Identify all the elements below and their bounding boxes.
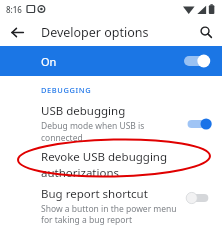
staticText: Debug mode when USB is connected: [41, 120, 186, 144]
button[interactable]: Bug report shortcut: [0, 182, 222, 225]
button[interactable]: Back: [4, 19, 30, 45]
staticText: On: [41, 54, 57, 69]
staticText: DEBUGGING: [41, 85, 92, 95]
button[interactable]: USB debugging: [0, 99, 222, 148]
staticText: USB debugging: [41, 103, 126, 119]
staticText: Developer options: [41, 24, 149, 41]
button[interactable]: On: [0, 46, 222, 76]
staticText: Bug report shortcut: [41, 186, 148, 202]
staticText: 8:16: [6, 4, 22, 15]
button[interactable]: Revoke USB debugging authorizations: [0, 148, 222, 182]
staticText: Revoke USB debugging authorizations: [41, 149, 212, 181]
staticText: Show a button in the power menu for taki…: [41, 203, 184, 225]
button[interactable]: Search: [193, 19, 219, 45]
